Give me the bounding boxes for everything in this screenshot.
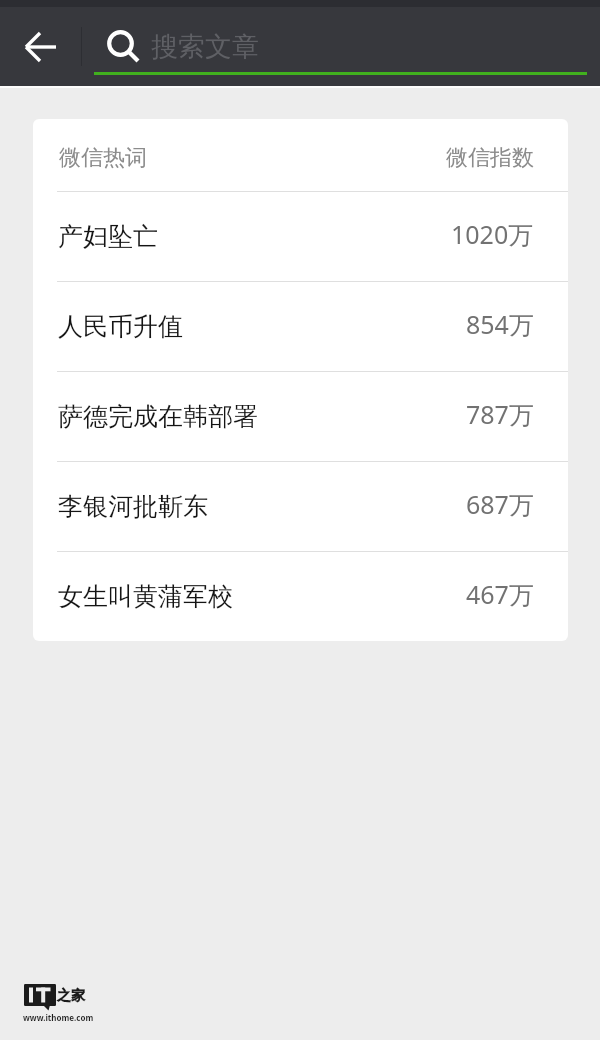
button[interactable]: 产妇坠亡 bbox=[33, 192, 568, 281]
button[interactable]: 搜索文章 bbox=[82, 7, 600, 86]
staticText: 854万 bbox=[466, 307, 534, 341]
staticText: 687万 bbox=[466, 487, 534, 521]
staticText: 搜索文章 bbox=[151, 30, 259, 64]
staticText: 女生叫黄蒲军校 bbox=[58, 581, 233, 612]
staticText: 之家 bbox=[57, 987, 85, 1005]
staticText: 微信热词 bbox=[59, 144, 147, 172]
staticText: 人民币升值 bbox=[58, 311, 183, 342]
staticText: 微信指数 bbox=[446, 144, 534, 172]
button[interactable]: 萨德完成在韩部署 bbox=[33, 372, 568, 461]
button[interactable]: 李银河批靳东 bbox=[33, 462, 568, 551]
staticText: 467万 bbox=[466, 577, 534, 611]
button[interactable]: Back bbox=[0, 7, 81, 86]
button[interactable]: 人民币升值 bbox=[33, 282, 568, 371]
staticText: 1020万 bbox=[451, 217, 534, 251]
button[interactable]: 女生叫黄蒲军校 bbox=[33, 552, 568, 641]
staticText: 产妇坠亡 bbox=[58, 221, 158, 252]
staticText: 萨德完成在韩部署 bbox=[58, 401, 258, 432]
staticText: 李银河批靳东 bbox=[58, 491, 208, 522]
staticText: 787万 bbox=[466, 397, 534, 431]
staticText: www.ithome.com bbox=[23, 1012, 94, 1023]
